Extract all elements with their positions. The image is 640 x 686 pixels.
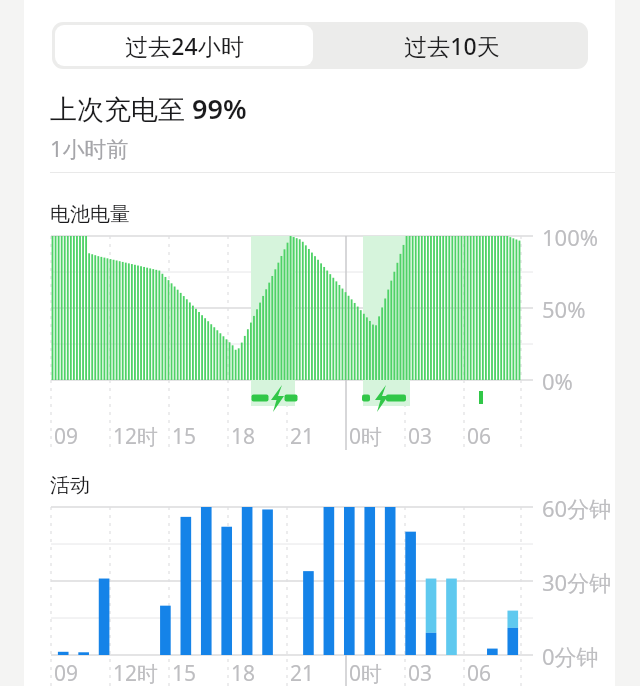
staticText: 15	[172, 422, 197, 451]
staticText: 03	[408, 659, 433, 686]
staticText: 06	[467, 422, 492, 451]
staticText: 过去10天	[404, 30, 500, 61]
staticText: 1小时前	[50, 133, 129, 163]
button[interactable]: 过去24小时	[55, 25, 313, 66]
staticText: 过去24小时	[125, 30, 244, 61]
staticText: 60分钟	[542, 493, 612, 523]
staticText: 06	[467, 659, 492, 686]
staticText: 21	[290, 659, 315, 686]
staticText: 03	[408, 422, 433, 451]
button[interactable]: 过去10天	[316, 22, 588, 69]
staticText: 15	[172, 659, 197, 686]
staticText: 18	[231, 659, 256, 686]
staticText: 0时	[349, 659, 383, 686]
staticText: 09	[54, 659, 79, 686]
staticText: 电池电量	[50, 202, 130, 227]
staticText: 0分钟	[542, 641, 599, 671]
staticText: 21	[290, 422, 315, 451]
staticText: 30分钟	[542, 567, 612, 597]
staticText: 50%	[542, 294, 586, 324]
staticText: 12时	[113, 659, 159, 686]
staticText: 100%	[542, 222, 599, 252]
staticText: 18	[231, 422, 256, 451]
staticText: 09	[54, 422, 79, 451]
staticText: 0%	[542, 366, 573, 396]
staticText: 0时	[349, 422, 383, 451]
staticText: 活动	[50, 473, 90, 498]
staticText: 12时	[113, 422, 159, 451]
staticText: 上次充电至 99%	[50, 90, 247, 127]
